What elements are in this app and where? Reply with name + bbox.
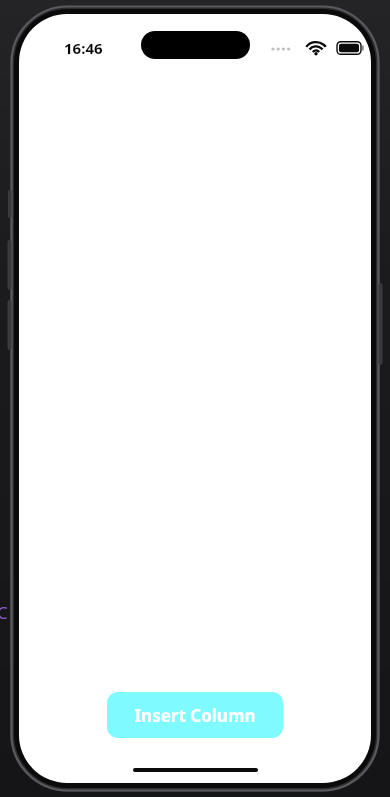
staticText: C (0, 601, 8, 624)
button[interactable]: Insert Column (107, 692, 283, 738)
staticText: Insert Column (134, 704, 256, 727)
staticText: 16:46 (64, 38, 103, 58)
